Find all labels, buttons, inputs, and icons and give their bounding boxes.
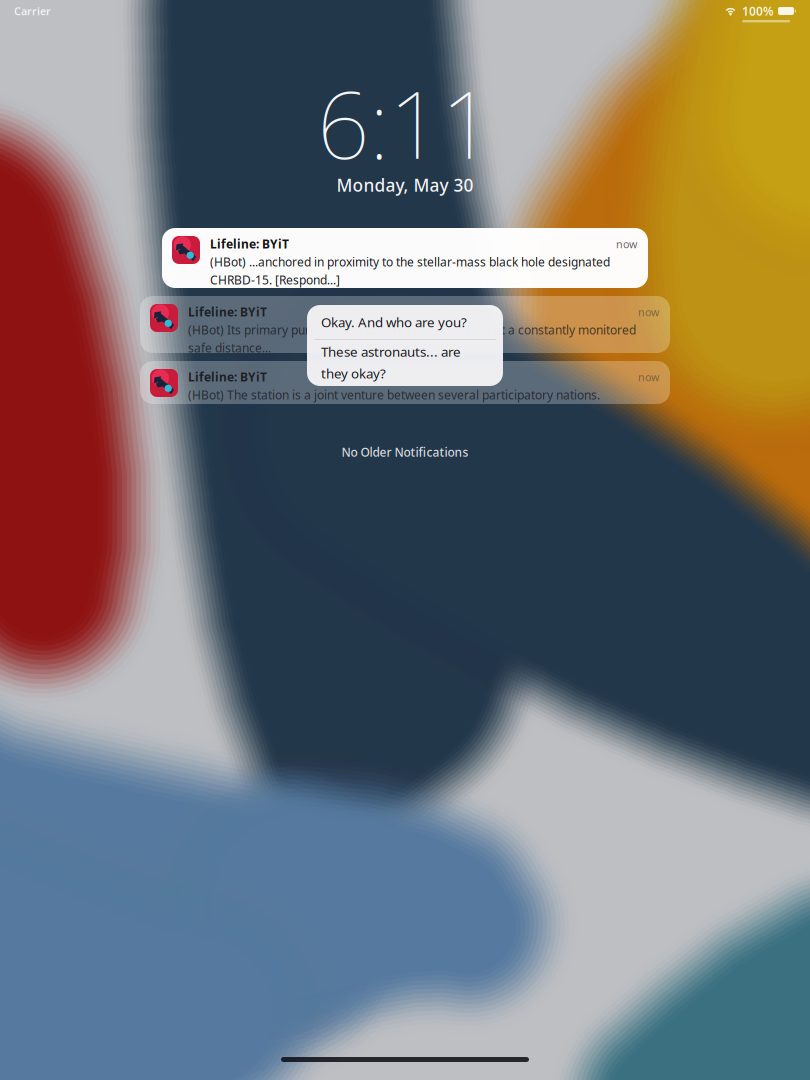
button[interactable]: Lifeline: BYiT bbox=[140, 296, 670, 353]
staticText: they okay? bbox=[321, 364, 386, 382]
staticText: 100% bbox=[742, 3, 774, 19]
staticText: Monday, May 30 bbox=[336, 173, 473, 196]
staticText: CHRBD-15. [Respond...] bbox=[210, 272, 340, 288]
staticText: now bbox=[616, 237, 637, 251]
staticText: (HBot) Its primary purpose is to observe… bbox=[188, 322, 636, 338]
staticText: Lifeline: BYiT bbox=[188, 304, 267, 320]
staticText: (HBot) The station is a joint venture be… bbox=[188, 387, 600, 403]
staticText: 6:11 bbox=[317, 62, 493, 184]
staticText: (HBot) ...anchored in proximity to the s… bbox=[210, 254, 610, 270]
button[interactable]: Lifeline: BYiT bbox=[140, 361, 670, 404]
button[interactable]: These astronauts... are bbox=[307, 339, 503, 386]
staticText: now bbox=[638, 305, 659, 319]
staticText: Okay. And who are you? bbox=[321, 313, 467, 331]
button[interactable]: Lifeline: BYiT bbox=[162, 228, 648, 288]
button[interactable]: Okay. And who are you? bbox=[307, 305, 503, 339]
staticText: Lifeline: BYiT bbox=[210, 236, 289, 252]
staticText: now bbox=[638, 370, 659, 384]
staticText: safe distance... bbox=[188, 340, 271, 356]
staticText: Lifeline: BYiT bbox=[188, 369, 267, 385]
staticText: Carrier bbox=[14, 4, 51, 18]
staticText: These astronauts... are bbox=[321, 343, 461, 360]
staticText: No Older Notifications bbox=[341, 444, 468, 460]
